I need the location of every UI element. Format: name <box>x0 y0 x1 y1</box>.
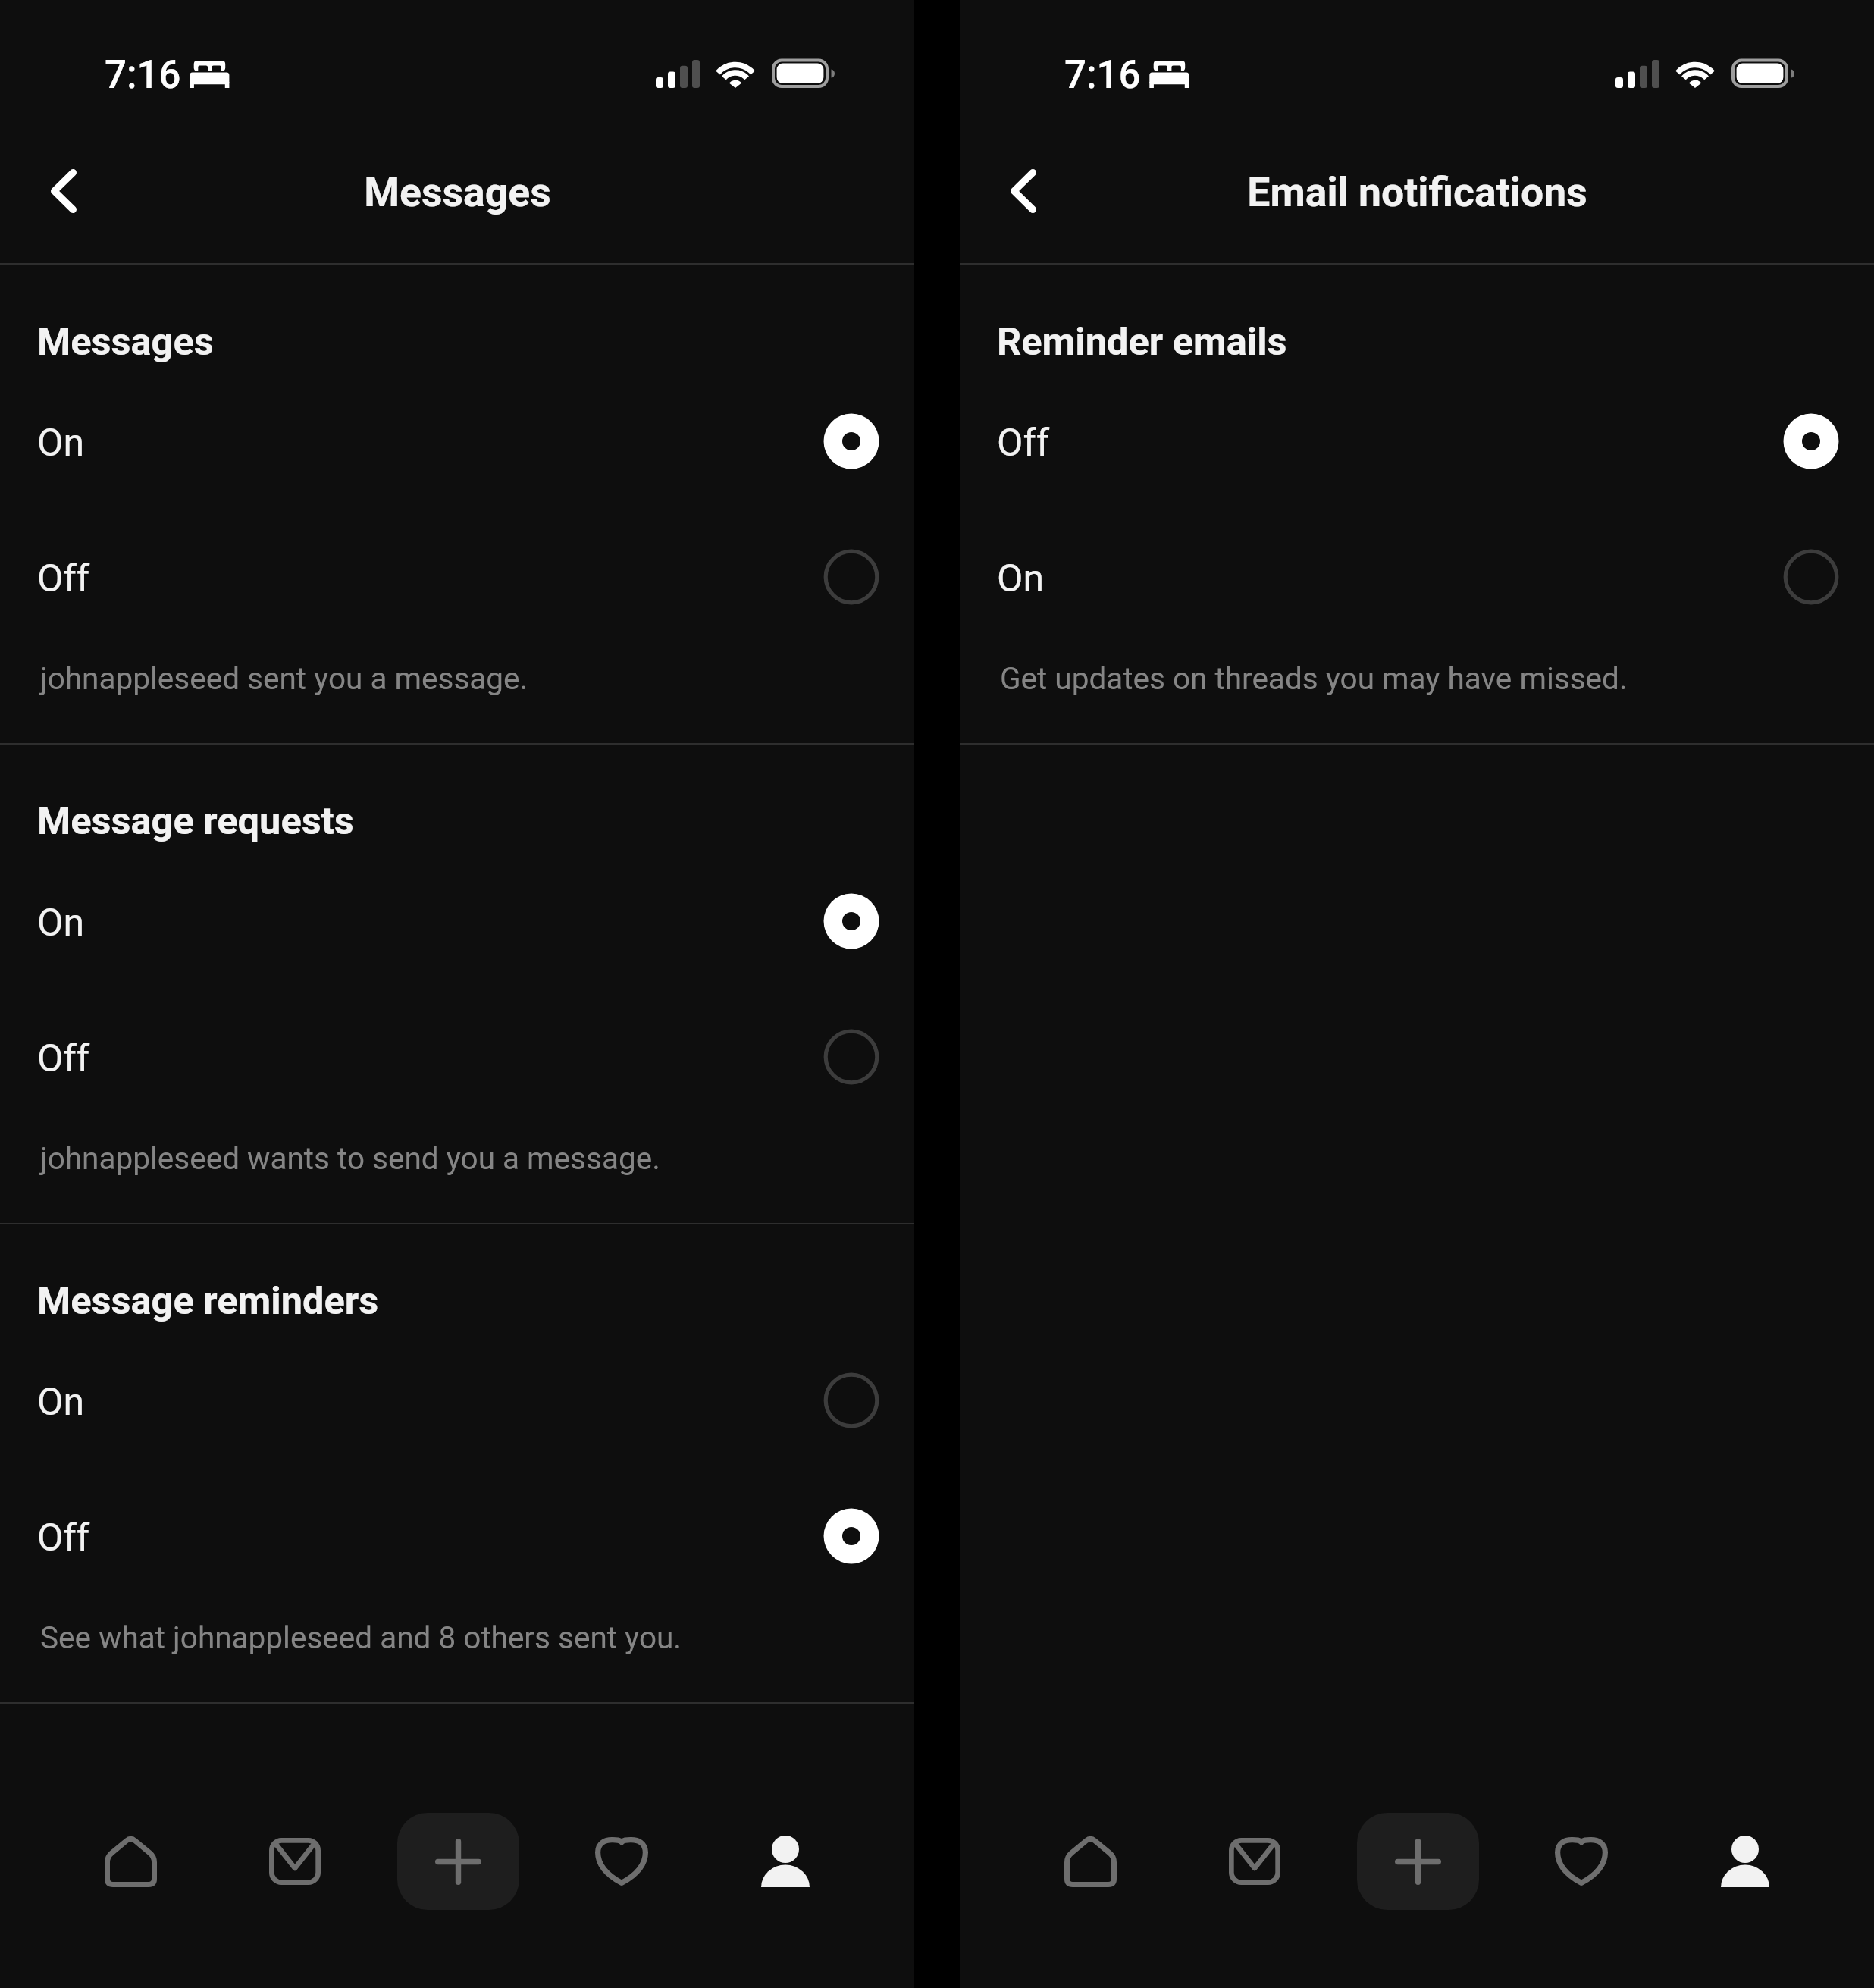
button[interactable]: On <box>960 537 1874 635</box>
staticText: Off <box>37 1516 90 1560</box>
staticText: Email notifications <box>1247 168 1587 216</box>
staticText: 7:16 <box>105 52 181 98</box>
staticText: Off <box>997 421 1050 466</box>
button[interactable]: Home <box>1029 1793 1151 1930</box>
button[interactable]: Off <box>0 1496 914 1594</box>
button[interactable]: Profile <box>1684 1793 1806 1930</box>
button[interactable]: Back <box>0 144 127 238</box>
staticText: Messages <box>364 168 551 216</box>
button[interactable]: Create <box>397 1793 519 1930</box>
staticText: Get updates on threads you may have miss… <box>1000 660 1628 696</box>
button[interactable]: On <box>0 881 914 980</box>
staticText: johnappleseed sent you a message. <box>40 660 528 696</box>
button[interactable]: Off <box>0 537 914 635</box>
staticText: On <box>37 901 85 945</box>
staticText: 7:16 <box>1064 52 1141 98</box>
button[interactable]: Back <box>960 144 1087 238</box>
button[interactable]: On <box>0 1360 914 1459</box>
button[interactable]: Home <box>70 1793 191 1930</box>
button[interactable]: Create <box>1357 1793 1479 1930</box>
staticText: Message requests <box>37 798 354 843</box>
button[interactable]: Off <box>960 401 1874 500</box>
staticText: Messages <box>37 319 214 364</box>
button[interactable]: Likes <box>1521 1793 1642 1930</box>
button[interactable]: Messages <box>234 1793 356 1930</box>
button[interactable]: On <box>0 401 914 500</box>
staticText: Message reminders <box>37 1278 379 1323</box>
staticText: On <box>37 421 85 466</box>
button[interactable]: Off <box>0 1017 914 1115</box>
staticText: On <box>997 557 1045 601</box>
button[interactable]: Messages <box>1194 1793 1315 1930</box>
button[interactable]: Profile <box>725 1793 846 1930</box>
staticText: Off <box>37 1036 90 1081</box>
button[interactable]: Likes <box>561 1793 682 1930</box>
staticText: Off <box>37 557 90 601</box>
staticText: Reminder emails <box>997 319 1287 364</box>
staticText: See what johnappleseed and 8 others sent… <box>40 1620 682 1655</box>
staticText: On <box>37 1380 85 1425</box>
staticText: johnappleseed wants to send you a messag… <box>40 1140 660 1176</box>
